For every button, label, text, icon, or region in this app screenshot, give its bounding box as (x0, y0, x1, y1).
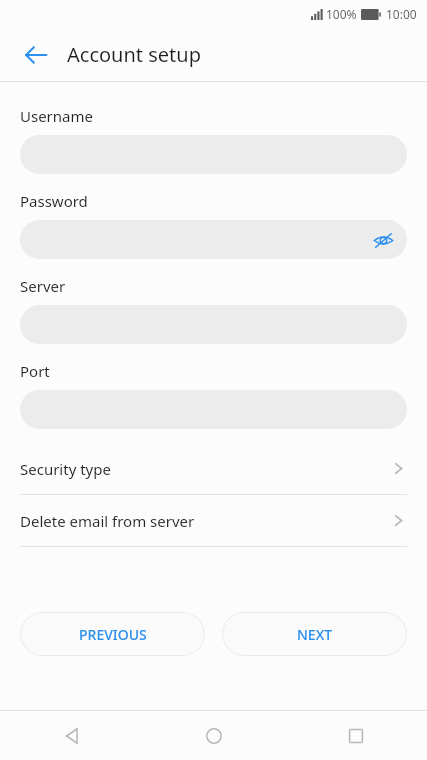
button[interactable]: PREVIOUS (20, 612, 205, 656)
staticText: Port (20, 361, 50, 381)
button[interactable]: Delete email from server (0, 495, 427, 546)
staticText: NEXT (297, 625, 333, 644)
button[interactable]: NEXT (222, 612, 407, 656)
staticText: Account setup (67, 41, 201, 68)
staticText: 10:00 (386, 6, 417, 22)
button[interactable]: Home (143, 711, 285, 760)
staticText: 100% (326, 6, 357, 22)
staticText: Server (20, 276, 66, 296)
staticText: Security type (20, 459, 111, 479)
staticText: PREVIOUS (79, 625, 147, 644)
button[interactable]: Recent apps (285, 711, 427, 760)
button[interactable]: Back (0, 711, 143, 760)
button[interactable]: Show password (367, 224, 399, 256)
staticText: Username (20, 106, 93, 126)
button[interactable]: Back (12, 31, 60, 79)
button[interactable]: Security type (0, 443, 427, 494)
button[interactable]: Show password (20, 220, 407, 259)
staticText: Password (20, 191, 88, 211)
staticText: Delete email from server (20, 511, 195, 531)
